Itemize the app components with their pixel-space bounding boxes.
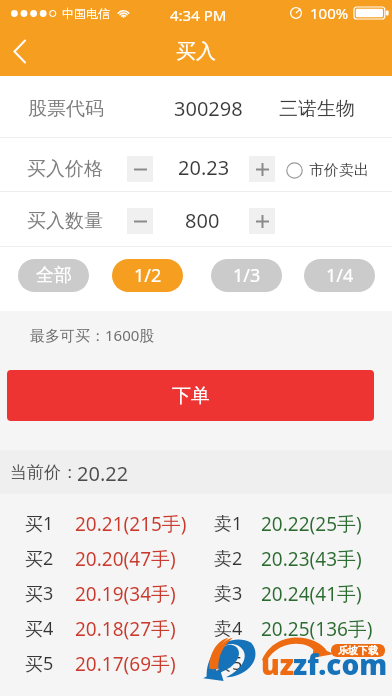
- button[interactable]: Decrease: [127, 208, 153, 234]
- staticText: 1/4: [326, 263, 354, 288]
- staticText: 买入数量: [27, 209, 103, 233]
- staticText: 300298: [174, 95, 243, 122]
- staticText: 当前价：: [10, 462, 78, 483]
- staticText: 20.19(34手): [75, 581, 176, 607]
- staticText: 市价卖出: [309, 161, 369, 180]
- staticText: 乐坡下载: [338, 644, 378, 657]
- button[interactable]: Increase: [249, 156, 275, 182]
- staticText: 20.18(27手): [75, 616, 176, 642]
- staticText: 20.20(47手): [75, 546, 176, 572]
- staticText: 1/3: [233, 263, 261, 288]
- button[interactable]: Back: [0, 31, 40, 71]
- button[interactable]: 买4: [0, 611, 392, 646]
- button[interactable]: 1/3: [211, 259, 282, 292]
- staticText: 20.24(41手): [261, 581, 362, 607]
- staticText: 20.22(25手): [261, 511, 362, 537]
- staticText: 卖5: [214, 651, 243, 676]
- staticText: 卖2: [214, 546, 243, 571]
- staticText: 20.22: [77, 460, 129, 487]
- staticText: 100%: [310, 3, 349, 23]
- staticText: 三诺生物: [279, 97, 355, 121]
- staticText: zf.com: [293, 645, 388, 683]
- staticText: 买入价格: [27, 157, 103, 181]
- staticText: 买1: [25, 511, 54, 536]
- staticText: 下单: [172, 384, 210, 408]
- button[interactable]: Increase: [249, 208, 275, 234]
- staticText: uz: [261, 645, 294, 683]
- staticText: 买5: [25, 651, 54, 676]
- staticText: 1/2: [134, 263, 162, 288]
- button[interactable]: 买3: [0, 576, 392, 611]
- staticText: 800: [185, 207, 220, 234]
- staticText: 卖4: [214, 616, 243, 641]
- button[interactable]: 1/2: [112, 259, 183, 292]
- staticText: 买入: [176, 39, 216, 64]
- button[interactable]: Decrease: [127, 156, 153, 182]
- staticText: 股票代码: [28, 97, 104, 121]
- staticText: 20.23: [178, 154, 230, 181]
- button[interactable]: 买1: [0, 506, 392, 541]
- staticText: 4:34 PM: [170, 5, 227, 25]
- staticText: 全部: [36, 264, 72, 287]
- staticText: 买2: [25, 546, 54, 571]
- staticText: 中国电信: [62, 6, 110, 21]
- staticText: 20.17(69手): [75, 651, 176, 677]
- button[interactable]: 市价卖出: [286, 157, 369, 184]
- button[interactable]: 买2: [0, 541, 392, 576]
- staticText: 卖3: [214, 581, 243, 606]
- staticText: 20.21(215手): [75, 511, 187, 537]
- button[interactable]: 下单: [7, 370, 374, 421]
- staticText: 最多可买：1600股: [30, 325, 155, 345]
- staticText: 卖1: [214, 511, 243, 536]
- button[interactable]: 全部: [18, 259, 89, 292]
- staticText: 20.25(136手): [261, 616, 373, 642]
- staticText: 20.23(43手): [261, 546, 362, 572]
- button[interactable]: 买5: [0, 646, 392, 681]
- button[interactable]: 1/4: [304, 259, 375, 292]
- staticText: 买3: [25, 581, 54, 606]
- staticText: 买4: [25, 616, 54, 641]
